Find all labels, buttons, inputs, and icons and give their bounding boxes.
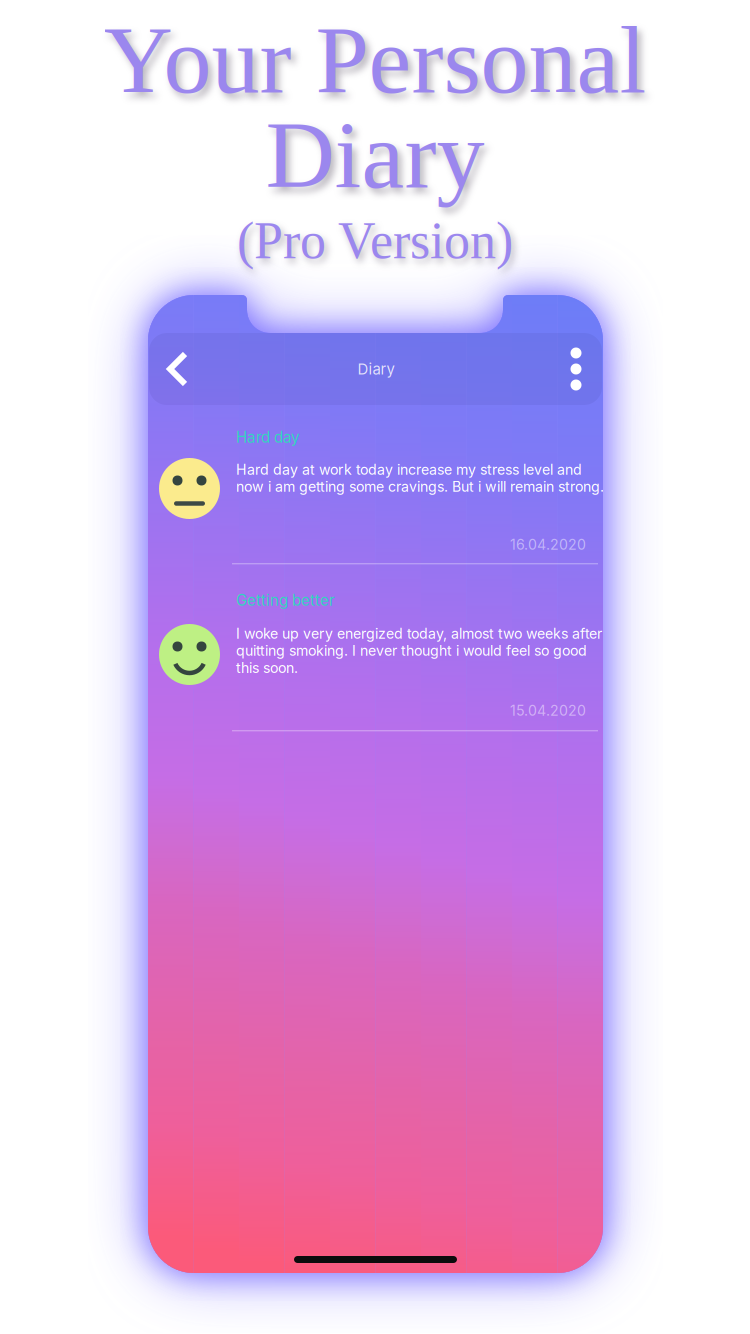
staticText: Getting better <box>236 591 335 609</box>
button[interactable]: Getting better <box>150 591 603 751</box>
staticText: Hard day at work today increase my stres… <box>236 461 604 495</box>
staticText: (Pro Version) <box>237 212 513 270</box>
button[interactable]: Hard day <box>150 428 603 588</box>
staticText: Diary <box>265 102 484 208</box>
staticText: 15.04.2020 <box>510 702 586 719</box>
button[interactable]: More options <box>550 333 602 405</box>
staticText: 16.04.2020 <box>510 536 586 553</box>
staticText: Hard day <box>236 428 300 446</box>
button[interactable]: Back <box>149 333 207 405</box>
staticText: Your Personal <box>103 7 646 113</box>
staticText: Diary <box>357 360 394 378</box>
staticText: I woke up very energized today, almost t… <box>236 625 602 676</box>
